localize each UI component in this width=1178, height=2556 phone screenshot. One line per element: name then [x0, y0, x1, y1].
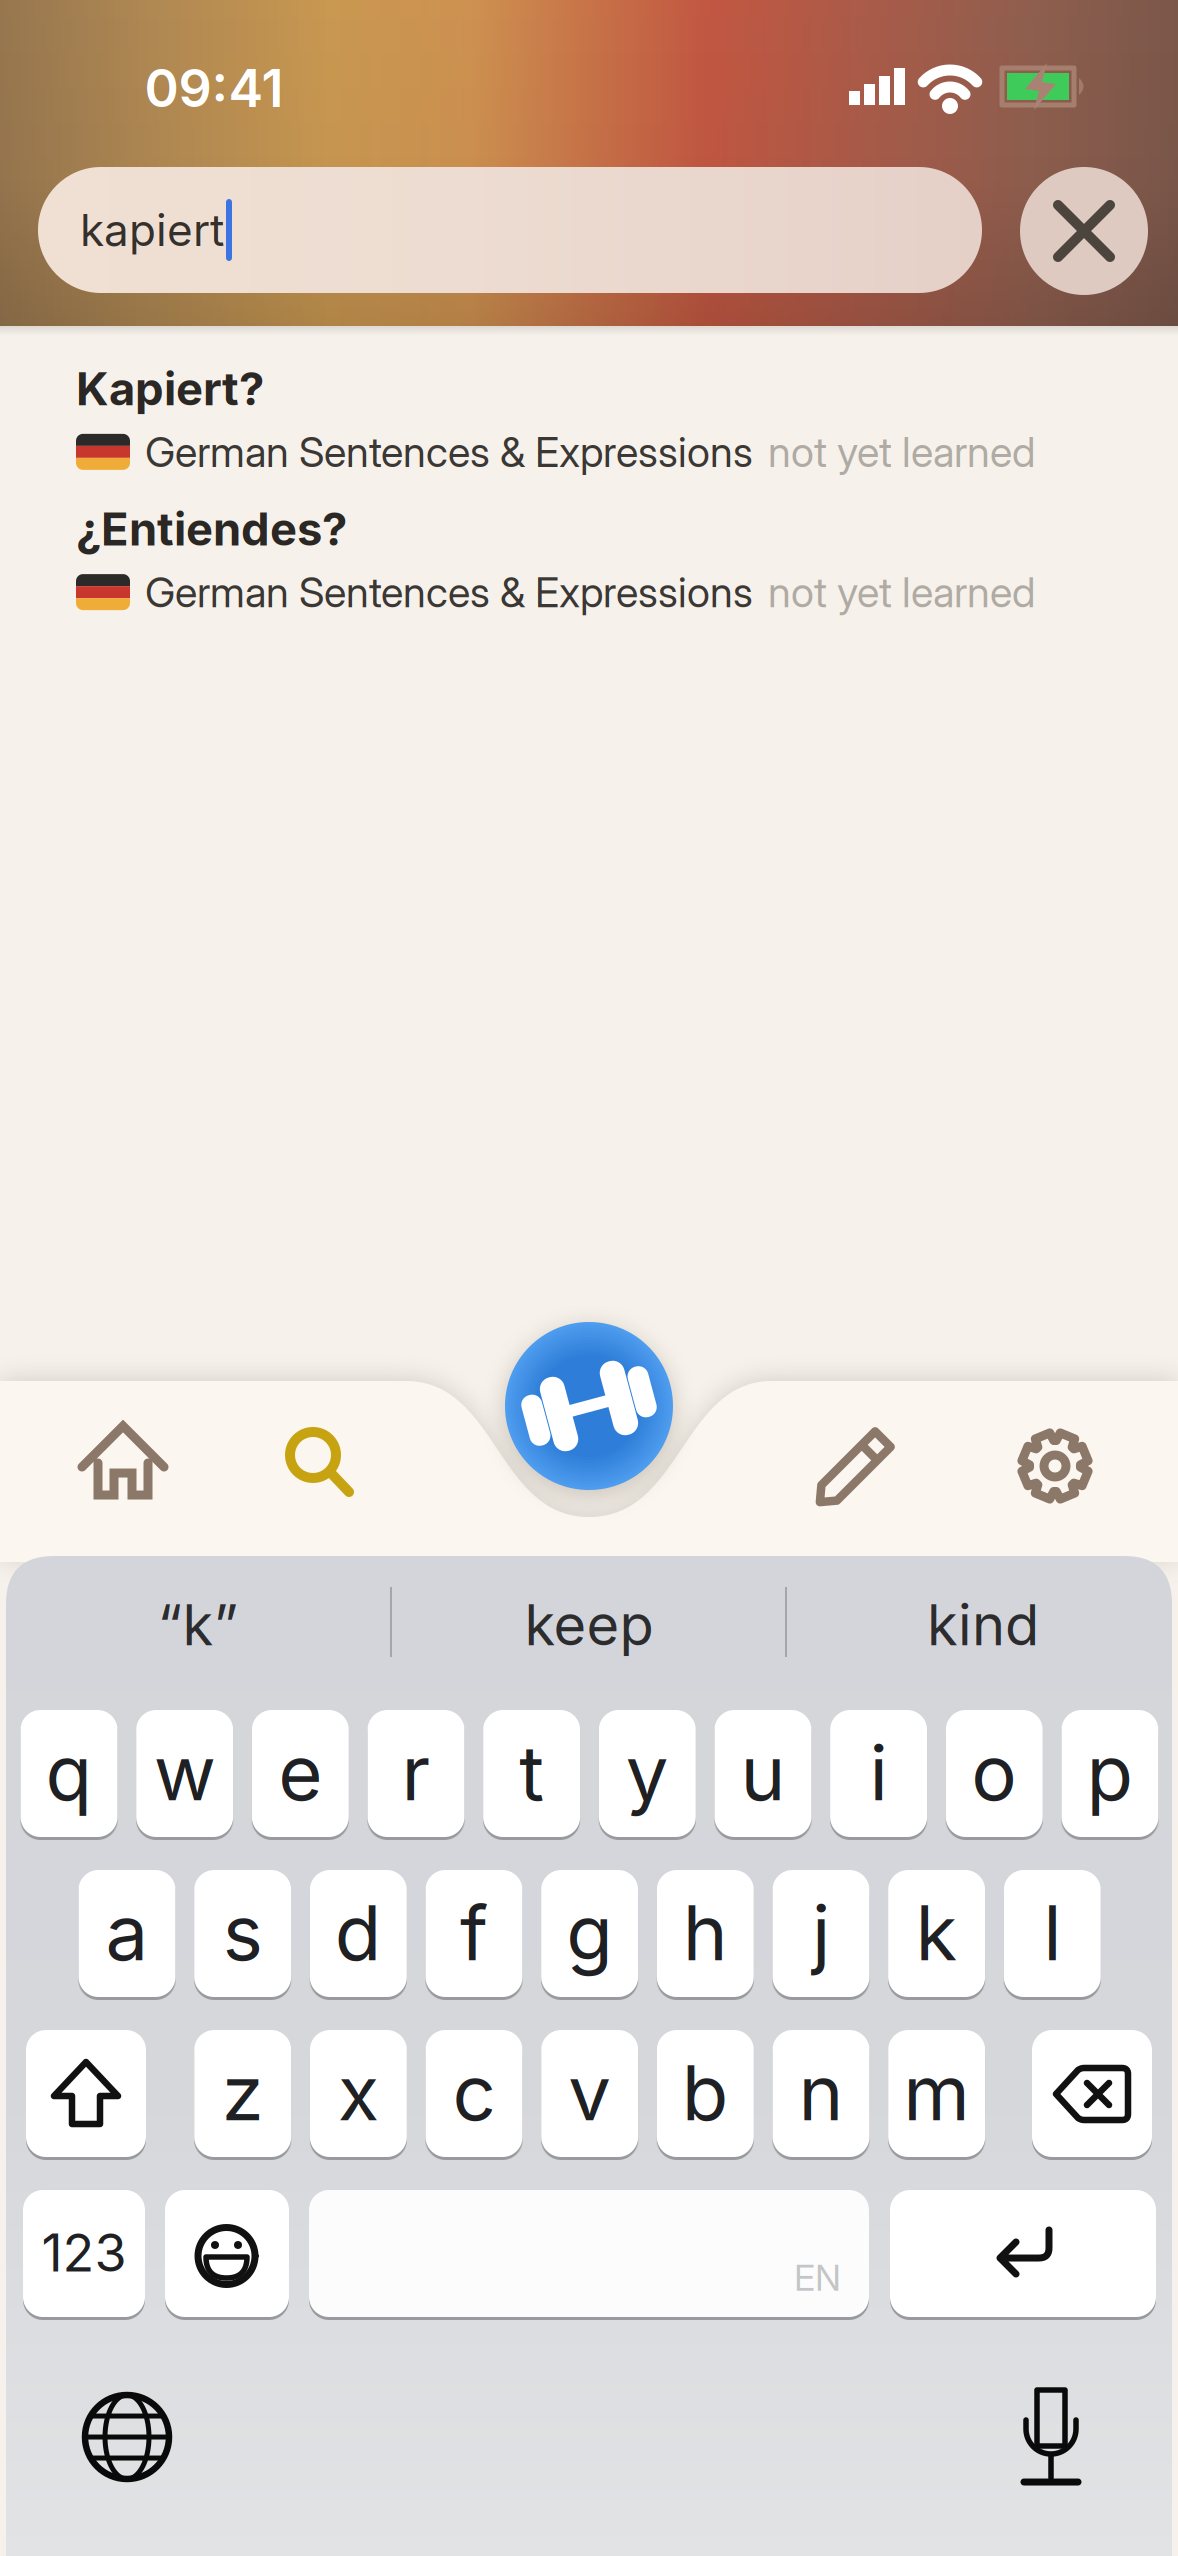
button[interactable]: m — [888, 2030, 985, 2157]
button[interactable]: j — [772, 1870, 869, 1997]
staticText: g — [566, 1888, 613, 1977]
button[interactable]: u — [714, 1710, 811, 1837]
staticText: z — [222, 2048, 264, 2137]
staticText: c — [452, 2048, 495, 2137]
staticText: q — [45, 1728, 92, 1817]
button[interactable]: e — [252, 1710, 349, 1837]
staticText: h — [683, 1888, 728, 1977]
staticText: i — [870, 1728, 888, 1817]
button[interactable] — [751, 1361, 961, 1571]
button[interactable]: keep — [399, 1575, 779, 1675]
staticText: German Sentences & Expressions — [145, 568, 753, 616]
button[interactable] — [18, 1361, 228, 1571]
staticText: kind — [927, 1592, 1039, 1658]
button[interactable]: kapiert — [38, 167, 982, 293]
button[interactable]: EN — [309, 2190, 869, 2317]
button[interactable]: h — [657, 1870, 754, 1997]
button[interactable]: “k” — [8, 1575, 388, 1675]
staticText: not yet learned — [768, 568, 1035, 616]
button[interactable] — [1020, 167, 1148, 295]
staticText: l — [1043, 1888, 1061, 1977]
button[interactable]: l — [1004, 1870, 1101, 1997]
button[interactable] — [165, 2190, 289, 2317]
staticText: v — [568, 2048, 611, 2137]
button[interactable]: c — [425, 2030, 522, 2157]
staticText: EN — [794, 2256, 841, 2299]
staticText: r — [401, 1728, 430, 1817]
staticText: “k” — [157, 1592, 238, 1658]
button[interactable]: b — [657, 2030, 754, 2157]
button[interactable]: o — [946, 1710, 1043, 1837]
button[interactable] — [890, 2190, 1156, 2317]
staticText: f — [460, 1888, 488, 1977]
staticText: kapiert — [80, 204, 224, 256]
staticText: x — [338, 2048, 379, 2137]
staticText: not yet learned — [768, 427, 1035, 476]
button[interactable] — [505, 1322, 673, 1490]
button[interactable]: v — [541, 2030, 638, 2157]
staticText: k — [916, 1888, 958, 1977]
button[interactable]: Kapiert? — [76, 362, 1035, 476]
button[interactable]: g — [541, 1870, 638, 1997]
button[interactable]: n — [772, 2030, 869, 2157]
button[interactable]: z — [194, 2030, 291, 2157]
staticText: ¿Entiendes? — [76, 502, 347, 556]
button[interactable]: s — [194, 1870, 291, 1997]
button[interactable]: 123 — [23, 2190, 145, 2317]
staticText: a — [105, 1888, 148, 1977]
staticText: 123 — [41, 2222, 126, 2283]
staticText: Kapiert? — [76, 362, 264, 415]
staticText: s — [223, 1888, 263, 1977]
button[interactable]: p — [1061, 1710, 1158, 1837]
staticText: b — [682, 2048, 729, 2137]
button[interactable]: w — [136, 1710, 233, 1837]
button[interactable] — [26, 2030, 146, 2157]
staticText: o — [971, 1728, 1017, 1817]
staticText: 09:41 — [144, 57, 283, 119]
staticText: keep — [524, 1592, 653, 1658]
staticText: j — [812, 1888, 830, 1977]
staticText: m — [903, 2048, 970, 2137]
button[interactable]: a — [78, 1870, 175, 1997]
button[interactable]: k — [888, 1870, 985, 1997]
button[interactable] — [1032, 2030, 1152, 2157]
staticText: t — [519, 1728, 544, 1817]
button[interactable] — [208, 1359, 418, 1569]
staticText: u — [740, 1728, 785, 1817]
button[interactable]: f — [425, 1870, 522, 1997]
button[interactable] — [950, 1361, 1160, 1571]
button[interactable]: i — [830, 1710, 927, 1837]
button[interactable]: kind — [793, 1575, 1173, 1675]
staticText: p — [1086, 1728, 1133, 1817]
button[interactable]: ¿Entiendes? — [76, 502, 1035, 616]
button[interactable]: x — [310, 2030, 407, 2157]
staticText: German Sentences & Expressions — [145, 427, 753, 476]
button[interactable] — [976, 2362, 1126, 2512]
staticText: y — [626, 1728, 669, 1817]
staticText: d — [335, 1888, 382, 1977]
button[interactable] — [52, 2362, 202, 2512]
staticText: n — [798, 2048, 843, 2137]
staticText: e — [278, 1728, 322, 1817]
button[interactable]: y — [599, 1710, 696, 1837]
button[interactable]: d — [310, 1870, 407, 1997]
button[interactable]: t — [483, 1710, 580, 1837]
button[interactable]: r — [367, 1710, 464, 1837]
staticText: w — [154, 1728, 216, 1817]
button[interactable]: q — [20, 1710, 117, 1837]
